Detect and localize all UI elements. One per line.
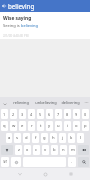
- button[interactable]: Shift: [1, 145, 13, 155]
- button[interactable]: j: [59, 133, 66, 143]
- staticText: q: [3, 123, 6, 129]
- button[interactable]: 6: [46, 109, 53, 119]
- button[interactable]: 1: [1, 109, 8, 119]
- staticText: s: [16, 135, 19, 141]
- button[interactable]: 2: [10, 109, 17, 119]
- staticText: 4: [30, 112, 33, 117]
- staticText: n: [62, 147, 65, 153]
- staticText: k: [70, 135, 73, 141]
- staticText: 2/1/20 4:40:30 PM: [3, 34, 29, 38]
- button[interactable]: Emoji: [11, 157, 21, 167]
- button[interactable]: c: [33, 145, 40, 155]
- button[interactable]: z: [15, 145, 22, 155]
- button[interactable]: .: [68, 157, 76, 167]
- button[interactable]: w: [10, 121, 17, 131]
- staticText: o: [75, 123, 78, 129]
- button[interactable]: r: [28, 121, 35, 131]
- button[interactable]: b: [51, 145, 58, 155]
- button[interactable]: l: [77, 133, 84, 143]
- button[interactable]: i: [64, 121, 71, 131]
- button[interactable]: q: [1, 121, 8, 131]
- button[interactable]: Back: [13, 168, 26, 180]
- staticText: 0: [84, 112, 87, 117]
- staticText: 6: [48, 112, 51, 117]
- staticText: v: [44, 147, 47, 153]
- button[interactable]: Voice input: [0, 97, 9, 108]
- button[interactable]: s: [14, 133, 21, 143]
- button[interactable]: v: [42, 145, 49, 155]
- staticText: x: [26, 147, 29, 153]
- staticText: 3: [21, 112, 24, 117]
- button[interactable]: n: [60, 145, 67, 155]
- staticText: believing: [8, 2, 35, 10]
- staticText: Seeing is: [3, 23, 21, 28]
- staticText: .: [71, 159, 73, 165]
- button[interactable]: x: [24, 145, 31, 155]
- button[interactable]: More suggestions: [82, 97, 90, 108]
- staticText: believing: [21, 23, 38, 28]
- button[interactable]: o: [73, 121, 80, 131]
- staticText: c: [35, 147, 38, 153]
- staticText: p: [84, 123, 87, 129]
- button[interactable]: e: [19, 121, 26, 131]
- button[interactable]: p: [82, 121, 89, 131]
- staticText: u: [57, 123, 60, 129]
- button[interactable]: unbelieving: [32, 97, 59, 108]
- button[interactable]: d: [23, 133, 30, 143]
- button[interactable]: Home: [39, 168, 52, 180]
- staticText: f: [35, 135, 37, 141]
- staticText: Wise saying: [3, 15, 32, 22]
- button[interactable]: g: [41, 133, 48, 143]
- button[interactable]: Backspace: [78, 145, 89, 155]
- button[interactable]: 5: [37, 109, 44, 119]
- staticText: z: [18, 147, 20, 153]
- button[interactable]: 3: [19, 109, 26, 119]
- button[interactable]: !#1: [1, 157, 9, 167]
- button[interactable]: 0: [82, 109, 89, 119]
- staticText: m: [71, 147, 75, 153]
- button[interactable]: y: [46, 121, 53, 131]
- staticText: 8: [66, 112, 69, 117]
- staticText: 2: [12, 112, 15, 117]
- button[interactable]: 9: [73, 109, 80, 119]
- button[interactable]: t: [37, 121, 44, 131]
- button[interactable]: a: [6, 133, 12, 143]
- staticText: r: [31, 123, 33, 129]
- staticText: delivering: [61, 100, 80, 105]
- button[interactable]: f: [32, 133, 39, 143]
- staticText: d: [25, 135, 28, 141]
- staticText: y: [48, 123, 51, 129]
- button[interactable]: Recents: [64, 168, 77, 180]
- staticText: 1: [3, 112, 6, 117]
- button[interactable]: Back: [0, 0, 8, 12]
- staticText: relieving: [13, 100, 29, 105]
- staticText: i: [67, 123, 69, 129]
- button[interactable]: delivering: [59, 97, 82, 108]
- staticText: unbelieving: [35, 100, 57, 105]
- staticText: e: [21, 123, 24, 129]
- staticText: 5: [39, 112, 42, 117]
- staticText: j: [62, 135, 64, 141]
- button[interactable]: 7: [55, 109, 62, 119]
- staticText: !#1: [3, 160, 8, 164]
- button[interactable]: h: [50, 133, 57, 143]
- staticText: l: [80, 135, 82, 141]
- staticText: w: [12, 123, 16, 129]
- staticText: b: [53, 147, 56, 153]
- staticText: 7: [57, 112, 60, 117]
- staticText: h: [52, 135, 55, 141]
- button[interactable]: relieving: [9, 97, 32, 108]
- button[interactable]: u: [55, 121, 62, 131]
- staticText: a: [8, 135, 11, 141]
- button[interactable]: m: [69, 145, 76, 155]
- button[interactable]: 8: [64, 109, 71, 119]
- staticText: g: [43, 135, 46, 141]
- button[interactable]: 4: [28, 109, 35, 119]
- button[interactable]: k: [68, 133, 75, 143]
- staticText: 9: [75, 112, 78, 117]
- button[interactable]: Search: [78, 157, 89, 167]
- staticText: t: [40, 123, 42, 129]
